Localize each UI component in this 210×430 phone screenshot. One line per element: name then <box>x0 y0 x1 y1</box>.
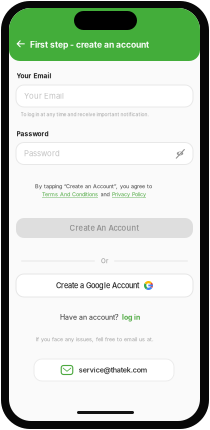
staticText: Your Email <box>16 72 51 80</box>
button[interactable]: service@thatek.com <box>34 359 174 381</box>
staticText: service@thatek.com <box>79 366 147 374</box>
staticText: Create An Account <box>69 223 139 233</box>
staticText: Password <box>16 130 48 138</box>
staticText: Password <box>24 149 60 158</box>
staticText: Have an account? <box>60 313 119 321</box>
staticText: Create a Google Account <box>56 281 139 290</box>
staticText: First step - create an account <box>30 39 149 50</box>
staticText: If you face any issues, fell free to ema… <box>36 336 154 342</box>
staticText: By tapping “Create an Account”, you agre… <box>35 183 152 190</box>
button[interactable]: Terms And Conditions <box>42 191 98 198</box>
staticText: Your Email <box>24 91 64 101</box>
staticText: log in <box>122 313 140 321</box>
staticText: Privacy Policy <box>112 191 146 198</box>
button[interactable]: Create An Account <box>16 218 193 238</box>
staticText: To log in at any time and receive import… <box>20 111 148 117</box>
staticText: Terms And Conditions <box>42 191 98 198</box>
button[interactable]: Back <box>11 35 29 53</box>
staticText: and <box>100 191 109 198</box>
staticText: Or <box>101 257 108 265</box>
button[interactable]: log in <box>122 313 140 321</box>
button[interactable]: Create a Google Account <box>16 274 193 297</box>
button[interactable]: Privacy Policy <box>112 191 146 198</box>
